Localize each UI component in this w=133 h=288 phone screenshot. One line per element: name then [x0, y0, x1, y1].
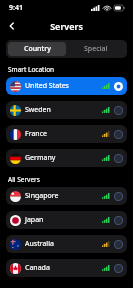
- staticText: 9:41: [9, 3, 23, 13]
- button[interactable]: United States: [6, 77, 127, 95]
- staticText: Japan: [25, 215, 44, 225]
- staticText: Special: [84, 44, 108, 54]
- button[interactable]: Singapore: [6, 187, 127, 205]
- button[interactable]: Canada: [6, 259, 127, 277]
- staticText: Singapore: [25, 191, 59, 201]
- staticText: Canada: [25, 263, 50, 273]
- button[interactable]: France: [6, 125, 127, 143]
- button[interactable]: Country: [8, 42, 66, 56]
- button[interactable]: Australia: [6, 235, 127, 253]
- staticText: Australia: [25, 239, 54, 249]
- staticText: Servers: [50, 20, 83, 32]
- staticText: Sweden: [25, 105, 51, 115]
- staticText: Smart Location: [8, 65, 55, 74]
- staticText: France: [25, 129, 47, 139]
- button[interactable]: Back: [3, 17, 21, 35]
- staticText: Country: [24, 44, 51, 54]
- button[interactable]: Sweden: [6, 101, 127, 119]
- button[interactable]: Germany: [6, 149, 127, 167]
- staticText: All Servers: [8, 175, 40, 184]
- staticText: United States: [25, 81, 69, 91]
- button[interactable]: Japan: [6, 211, 127, 229]
- button[interactable]: Special: [66, 42, 125, 56]
- staticText: Germany: [25, 153, 56, 163]
